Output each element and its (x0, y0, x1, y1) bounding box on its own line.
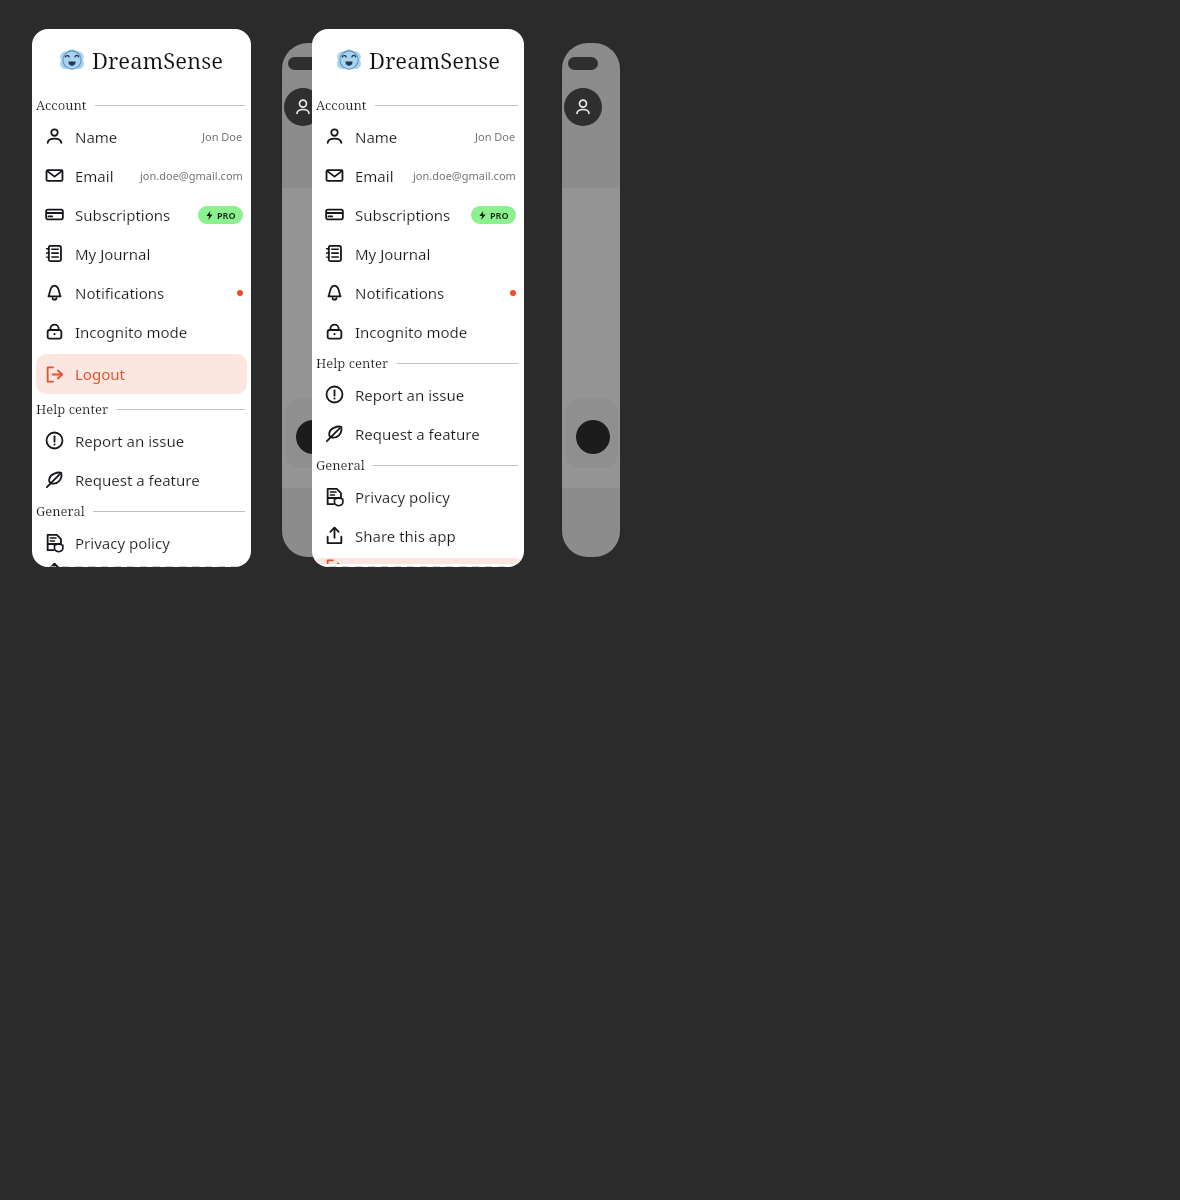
staticText: My Journal (355, 244, 431, 264)
staticText: Share this app (75, 562, 176, 567)
staticText: Incognito mode (355, 322, 468, 342)
staticText: General (316, 456, 365, 474)
staticText: PRO (217, 209, 236, 221)
staticText: Privacy policy (75, 533, 170, 553)
staticText: jon.doe@gmail.com (413, 168, 516, 183)
staticText: jon.doe@gmail.com (140, 168, 243, 183)
button[interactable]: Request a feature (32, 460, 251, 499)
button[interactable]: Logout (316, 558, 520, 564)
button[interactable]: Logout (36, 354, 247, 394)
staticText: Account (36, 96, 87, 114)
staticText: Report an issue (355, 385, 465, 405)
staticText: Email (355, 166, 394, 186)
staticText: Report an issue (75, 431, 185, 451)
button[interactable]: Incognito mode (312, 312, 524, 351)
button[interactable]: Privacy policy (312, 477, 524, 516)
button[interactable]: Email (312, 156, 524, 195)
staticText: General (36, 502, 85, 520)
staticText: Incognito mode (75, 322, 188, 342)
button[interactable]: Report an issue (312, 375, 524, 414)
button[interactable]: Privacy policy (32, 523, 251, 562)
staticText: Request a feature (75, 470, 200, 490)
staticText: DreamSense (369, 45, 500, 75)
button[interactable]: Request a feature (312, 414, 524, 453)
staticText: Name (75, 127, 118, 147)
button[interactable]: Email (32, 156, 251, 195)
staticText: Jon Doe (202, 129, 243, 144)
staticText: Subscriptions (75, 205, 171, 225)
staticText: Subscriptions (355, 205, 451, 225)
button[interactable]: Name (312, 117, 524, 156)
staticText: Share this app (355, 526, 456, 546)
staticText: Notifications (75, 283, 165, 303)
staticText: Name (355, 127, 398, 147)
staticText: PRO (490, 209, 509, 221)
button[interactable]: Subscriptions (32, 195, 251, 234)
button[interactable]: Name (32, 117, 251, 156)
staticText: Help center (36, 400, 109, 418)
staticText: Request a feature (355, 424, 480, 444)
button[interactable]: My Journal (312, 234, 524, 273)
button[interactable]: Share this app (32, 562, 251, 567)
staticText: Logout (75, 364, 125, 384)
button[interactable]: Notifications (32, 273, 251, 312)
staticText: Email (75, 166, 114, 186)
staticText: Account (316, 96, 367, 114)
button[interactable]: Report an issue (32, 421, 251, 460)
staticText: My Journal (75, 244, 151, 264)
button[interactable]: Incognito mode (32, 312, 251, 351)
staticText: Help center (316, 354, 389, 372)
staticText: DreamSense (92, 45, 223, 75)
staticText: Jon Doe (475, 129, 516, 144)
button[interactable]: Notifications (312, 273, 524, 312)
staticText: Notifications (355, 283, 445, 303)
button[interactable]: My Journal (32, 234, 251, 273)
button[interactable]: Share this app (312, 516, 524, 555)
button[interactable]: Subscriptions (312, 195, 524, 234)
staticText: Privacy policy (355, 487, 450, 507)
